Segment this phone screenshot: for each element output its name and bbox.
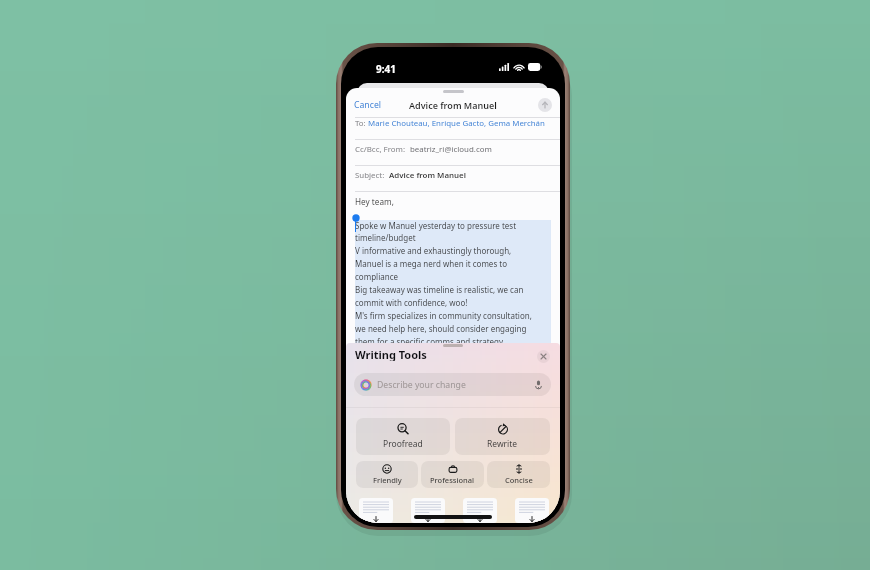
staticText: Concise <box>505 475 533 485</box>
staticText: Cc/Bcc, From: <box>355 144 410 155</box>
button[interactable]: Document suggestion <box>515 498 549 523</box>
button[interactable]: Describe your change <box>354 373 551 396</box>
staticText: Proofread <box>383 438 423 450</box>
button[interactable]: Friendly <box>356 461 418 488</box>
button[interactable]: Document suggestion <box>411 498 445 523</box>
button[interactable]: Concise <box>487 461 550 488</box>
staticText: 9:41 <box>376 62 396 76</box>
staticText: Subject: <box>355 170 389 181</box>
staticText: To: <box>355 118 368 128</box>
staticText: Advice from Manuel <box>389 170 466 181</box>
button[interactable]: Rewrite <box>455 418 550 455</box>
staticText: beatriz_ri@icloud.com <box>410 144 492 155</box>
button[interactable]: Professional <box>421 461 484 488</box>
staticText: Friendly <box>373 475 402 485</box>
button[interactable]: Cancel <box>354 99 382 111</box>
staticText: Spoke w Manuel yesterday to pressure tes… <box>355 220 532 347</box>
staticText: Professional <box>430 475 475 485</box>
staticText: Hey team, <box>355 196 394 207</box>
staticText: Advice from Manuel <box>409 99 497 111</box>
button[interactable]: Document suggestion <box>463 498 497 523</box>
staticText: Describe your change <box>377 379 466 391</box>
other: Dictate <box>534 380 543 389</box>
button[interactable]: Send <box>538 98 552 112</box>
staticText: Rewrite <box>487 438 518 450</box>
button[interactable]: Close <box>537 350 550 363</box>
button[interactable]: Proofread <box>356 418 450 455</box>
staticText: Marie Chouteau, Enrique Gacto, Gema Merc… <box>368 118 545 128</box>
button[interactable]: Document suggestion <box>359 498 393 523</box>
staticText: Writing Tools <box>355 347 427 361</box>
